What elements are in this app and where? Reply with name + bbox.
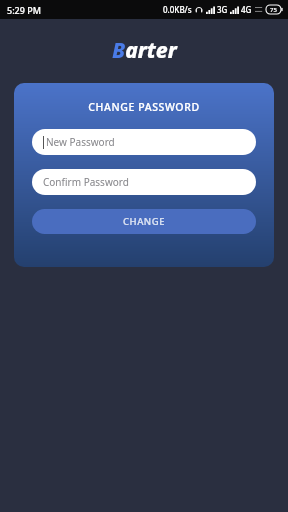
staticText: Confirm Password <box>43 175 129 189</box>
staticText: 75 <box>270 6 277 14</box>
staticText: New Password <box>46 135 115 149</box>
staticText: 0.0KB/s <box>163 4 192 15</box>
staticText: Barter <box>112 36 177 65</box>
button[interactable]: New Password <box>32 129 256 155</box>
staticText: CHANGE <box>123 215 165 228</box>
staticText: 3G <box>217 4 228 15</box>
staticText: 5:29 PM <box>7 4 41 16</box>
button[interactable]: Confirm Password <box>32 169 256 195</box>
staticText: CHANGE PASSWORD <box>88 100 200 114</box>
staticText: 4G <box>241 4 252 15</box>
button[interactable]: CHANGE <box>32 209 256 234</box>
